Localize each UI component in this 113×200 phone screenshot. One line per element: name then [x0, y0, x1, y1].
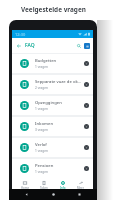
staticText: Inkomen: [35, 121, 54, 127]
staticText: 1 vragen: [35, 170, 49, 174]
button[interactable]: Pensioen: [12, 159, 93, 178]
staticText: Info: [60, 186, 66, 189]
staticText: Budgetten: [35, 58, 57, 64]
staticText: Home: [21, 186, 29, 189]
button[interactable]: Expand: [84, 124, 89, 129]
button[interactable]: Back: [15, 42, 23, 50]
staticText: Opzeggingen: [35, 100, 62, 106]
button[interactable]: Inkomen: [12, 117, 93, 136]
staticText: 2 vragen: [35, 86, 49, 90]
button[interactable]: Expand: [84, 82, 89, 87]
button[interactable]: Budgetten: [12, 54, 93, 73]
staticText: Meer: [77, 186, 84, 189]
button[interactable]: Taken: [38, 178, 50, 189]
button[interactable]: Meer: [75, 178, 86, 189]
button[interactable]: Opzeggingen: [12, 96, 93, 115]
staticText: Sepparate vuze de okkermof: [35, 79, 83, 85]
staticText: 3 vragen: [35, 128, 49, 132]
staticText: 1 vragen: [35, 149, 49, 153]
staticText: Pensioen: [35, 163, 54, 169]
staticText: Veelgestelde vragen: [21, 5, 86, 14]
staticText: 1 vragen: [35, 107, 49, 111]
staticText: 12:30: [15, 32, 26, 37]
staticText: FAQ: [25, 42, 35, 49]
button[interactable]: Expand: [84, 61, 89, 66]
button[interactable]: Verlof: [12, 138, 93, 157]
button[interactable]: Search: [75, 42, 83, 50]
button[interactable]: Expand: [84, 103, 89, 108]
button[interactable]: Info: [58, 178, 68, 189]
button[interactable]: Expand: [84, 166, 89, 171]
staticText: Taken: [40, 186, 48, 189]
button[interactable]: Expand: [84, 145, 89, 150]
button[interactable]: Home: [19, 178, 31, 189]
staticText: 1 vragen: [35, 65, 49, 69]
button[interactable]: Sepparate vuze de okkermof: [12, 75, 93, 94]
staticText: Verlof: [35, 142, 47, 148]
button[interactable]: Account: [84, 43, 90, 49]
